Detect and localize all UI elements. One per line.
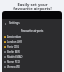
button[interactable]: London LHR — [2, 39, 62, 44]
staticText: London LHR — [7, 40, 22, 44]
button[interactable]: Rome FCO — [2, 59, 62, 64]
staticText: Madrid MAD — [7, 55, 23, 59]
staticText: Settings — [9, 21, 20, 25]
button[interactable]: Vienna VIE — [2, 64, 62, 69]
staticText: Favourite airports — [21, 29, 44, 33]
staticText: Paris CDG — [7, 45, 20, 49]
staticText: Amsterdam — [7, 35, 22, 39]
button[interactable]: Paris CDG — [2, 44, 62, 49]
button[interactable]: Back — [4, 21, 8, 25]
staticText: ‹ — [5, 21, 7, 25]
staticText: Berlin BER — [7, 50, 20, 54]
staticText: Vienna VIE — [7, 65, 20, 69]
button[interactable]: Madrid MAD — [2, 54, 62, 59]
button[interactable]: Berlin BER — [2, 49, 62, 54]
button[interactable]: Amsterdam — [2, 34, 62, 39]
staticText: Easily set your favourite airports! — [13, 2, 52, 11]
staticText: Rome FCO — [7, 60, 20, 64]
